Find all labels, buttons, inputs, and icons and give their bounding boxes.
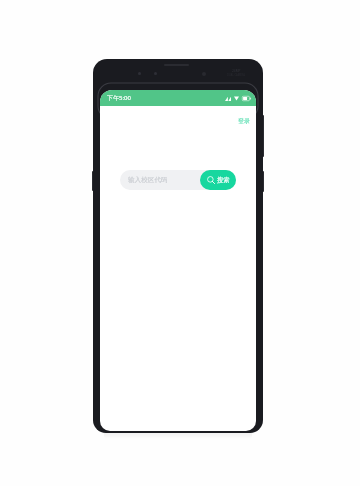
staticText: 输入校区代码 [128,176,168,184]
button[interactable]: 输入校区代码 [120,170,236,190]
staticText: 下午5:00 [107,94,131,102]
button[interactable]: 搜索 [200,170,236,190]
staticText: 搜索 [217,176,230,184]
staticText: 登录 [238,117,250,125]
button[interactable]: 登录 [232,115,256,127]
staticText: 24MP [232,69,241,73]
